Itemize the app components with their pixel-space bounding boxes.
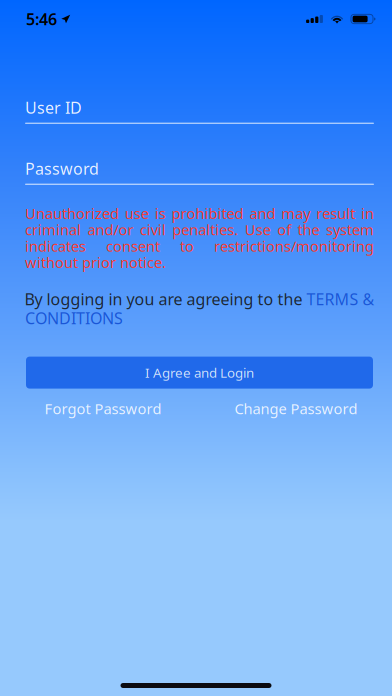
staticText: Password xyxy=(25,158,99,179)
staticText: CONDITIONS xyxy=(25,307,123,329)
staticText: Forgot Password xyxy=(44,399,161,418)
staticText: I Agree and Login xyxy=(145,364,254,381)
staticText: and xyxy=(249,203,275,223)
staticText: system xyxy=(326,220,374,239)
staticText: the xyxy=(298,220,320,239)
staticText: in xyxy=(361,203,374,223)
staticText: prohibited xyxy=(172,203,244,223)
staticText: By logging in you are agreeing to the xyxy=(24,288,306,310)
staticText: of xyxy=(277,220,291,239)
button[interactable]: CONDITIONS xyxy=(25,307,123,329)
staticText: and/or xyxy=(87,220,133,239)
staticText: 5:46 xyxy=(26,8,57,30)
staticText: penalties. xyxy=(172,220,238,239)
staticText: notice. xyxy=(120,253,166,272)
staticText: is xyxy=(155,203,166,223)
staticText: Unauthorized xyxy=(25,203,119,223)
staticText: Change Password xyxy=(234,399,357,418)
staticText: Use xyxy=(245,220,271,239)
staticText: may xyxy=(281,203,310,223)
staticText: criminal xyxy=(25,220,81,239)
button[interactable]: TERMS & xyxy=(306,288,374,310)
staticText: to xyxy=(180,236,194,256)
staticText: indicates xyxy=(25,236,86,256)
staticText: without xyxy=(25,253,78,272)
button[interactable]: Forgot Password xyxy=(25,399,181,419)
staticText: TERMS & xyxy=(306,288,374,310)
staticText: prior xyxy=(82,253,116,272)
staticText: civil xyxy=(140,220,166,239)
staticText: restrictions/monitoring xyxy=(214,236,374,256)
staticText: consent xyxy=(106,236,160,256)
staticText: use xyxy=(125,203,149,223)
button[interactable]: Change Password xyxy=(218,399,374,419)
staticText: User ID xyxy=(25,97,82,118)
staticText: result xyxy=(316,203,355,223)
staticText xyxy=(78,253,82,272)
button[interactable]: I Agree and Login xyxy=(26,357,373,389)
